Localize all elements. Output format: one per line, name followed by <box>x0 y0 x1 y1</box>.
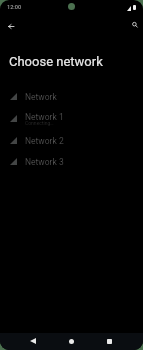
button[interactable]: Network 2 <box>0 130 143 151</box>
staticText: Choose network <box>9 54 103 69</box>
button[interactable]: Back <box>2 18 19 35</box>
button[interactable]: Network 1 <box>0 107 143 130</box>
button[interactable]: Back <box>24 333 41 349</box>
button[interactable]: Recent apps <box>101 333 118 349</box>
button[interactable]: Network 3 <box>0 151 143 172</box>
staticText: 12:00 <box>7 4 22 11</box>
button[interactable]: Home <box>63 333 80 349</box>
staticText: Connecting… <box>25 120 54 126</box>
staticText: Network 1 <box>25 112 64 122</box>
staticText: Network 3 <box>25 157 64 167</box>
staticText: Network <box>25 92 57 102</box>
staticText: Network 2 <box>25 136 64 146</box>
button[interactable]: Network <box>0 86 143 107</box>
button[interactable]: Search <box>126 16 143 33</box>
